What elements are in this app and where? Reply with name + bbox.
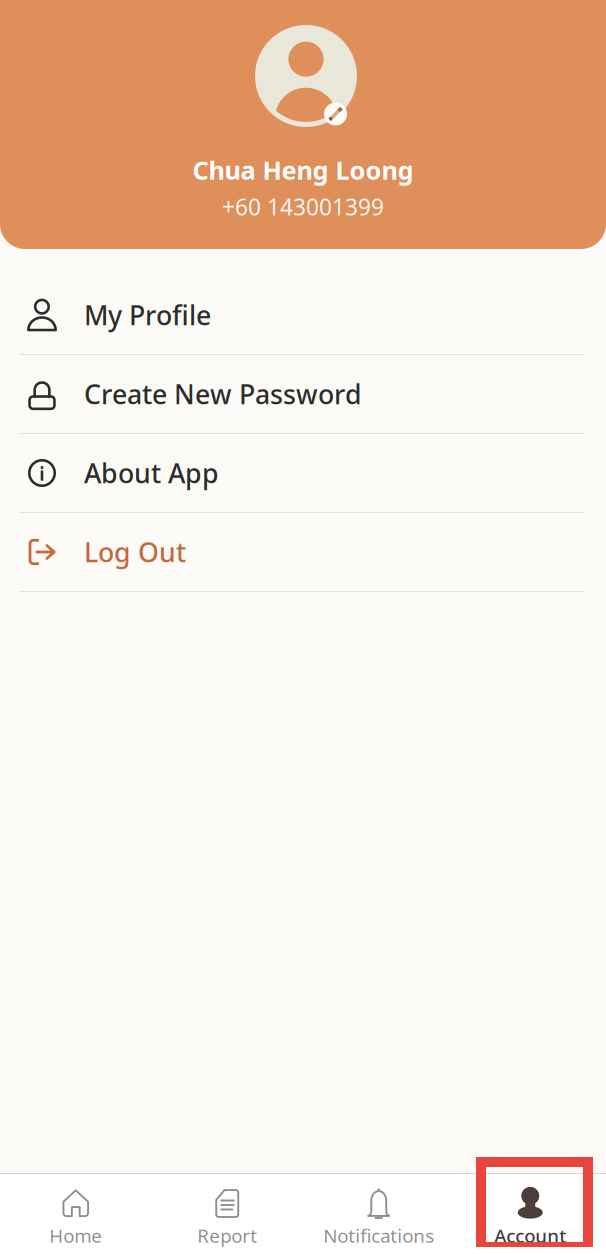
staticText: +60 143001399 [222,192,384,222]
staticText: Chua Heng Loong [192,153,413,187]
button[interactable]: Report [151,1174,303,1254]
staticText: Create New Password [84,376,362,412]
staticText: Log Out [84,534,186,570]
staticText: About App [84,455,219,491]
button[interactable]: Home [0,1174,151,1254]
button[interactable]: My Profile [0,276,606,355]
button[interactable]: Edit profile photo [252,25,354,127]
staticText: My Profile [84,297,211,333]
staticText: Account [494,1223,566,1248]
staticText: Report [197,1223,257,1248]
button[interactable]: Notifications [303,1174,454,1254]
button[interactable]: Create New Password [0,355,606,434]
button[interactable]: About App [0,434,606,513]
button[interactable]: Account [454,1174,606,1254]
staticText: Notifications [323,1223,434,1248]
button[interactable]: Log Out [0,513,606,592]
staticText: Home [49,1223,102,1248]
